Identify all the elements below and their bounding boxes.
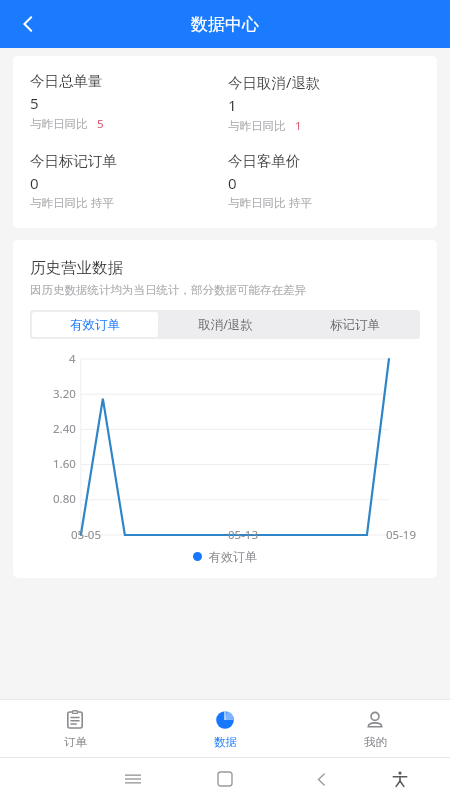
button[interactable]: 取消/退款 [162,312,288,337]
button[interactable]: 今日标记订单 [30,152,228,210]
staticText: 1.60 [53,456,76,472]
staticText: 我的 [364,735,387,749]
staticText: 0 [30,173,39,193]
button[interactable]: 订单 [0,700,150,757]
staticText: 与昨日同比 [228,119,286,133]
staticText: 数据 [214,735,237,749]
staticText: 持平 [91,196,114,210]
staticText: 今日标记订单 [30,152,117,170]
staticText: 0 [228,173,237,193]
staticText: 与昨日同比 [30,196,88,210]
button[interactable]: Accessibility [385,764,415,794]
staticText: 0.80 [53,491,76,507]
button[interactable]: 今日总单量 [30,72,228,132]
staticText: 3.20 [53,386,76,402]
staticText: 1 [228,95,237,115]
button[interactable]: 数据 [150,700,300,757]
staticText: 2.40 [53,421,76,437]
staticText: 4 [69,351,76,367]
staticText: 因历史数据统计均为当日统计，部分数据可能存在差异 [30,283,306,297]
staticText: 今日总单量 [30,72,103,90]
staticText: 5 [30,93,39,113]
staticText: 取消/退款 [198,316,253,333]
staticText: 与昨日同比 [228,196,286,210]
staticText: 有效订单 [209,549,257,564]
staticText: 今日客单价 [228,152,301,170]
button[interactable]: 有效订单 [32,312,158,337]
staticText: 订单 [64,735,87,749]
button[interactable]: Back [306,764,336,794]
staticText: 1 [295,118,302,134]
staticText: 5 [97,116,104,132]
button[interactable]: 标记订单 [292,312,418,337]
staticText: 有效订单 [70,317,120,333]
button[interactable]: Menu [118,764,148,794]
staticText: 今日取消/退款 [228,72,321,92]
staticText: 历史营业数据 [30,258,123,278]
button[interactable]: 今日客单价 [228,152,427,210]
button[interactable]: 今日取消/退款 [228,72,427,134]
staticText: 05-19 [386,527,417,543]
staticText: 与昨日同比 [30,117,88,131]
staticText: 持平 [289,196,312,210]
button[interactable]: Home [210,764,240,794]
staticText: 标记订单 [330,317,380,333]
staticText: 数据中心 [191,14,259,35]
staticText: 05-13 [228,527,259,543]
staticText: 05-05 [71,527,102,543]
button[interactable]: 我的 [300,700,450,757]
button[interactable]: Back [10,6,46,42]
